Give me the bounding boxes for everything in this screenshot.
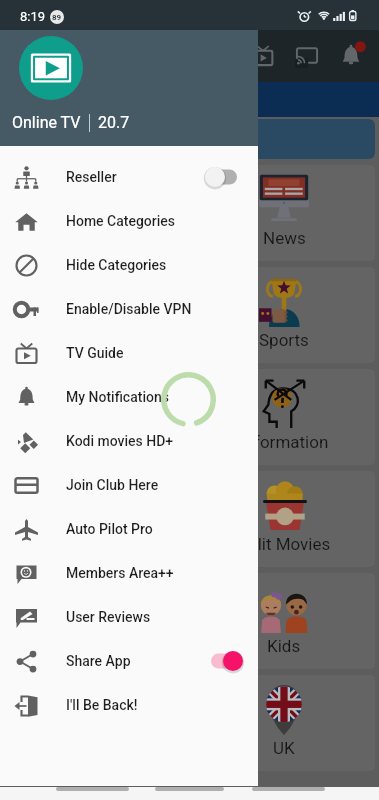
button[interactable]: Information	[4, 369, 186, 465]
button[interactable]: User Reviews	[0, 595, 258, 639]
button[interactable]: Kodi movies HD+	[0, 419, 258, 463]
button[interactable]: UK	[193, 675, 375, 771]
staticText: 20.7	[98, 113, 130, 132]
button[interactable]: TV	[241, 34, 285, 78]
staticText: TV Guide	[66, 345, 124, 361]
button[interactable]: Toggle	[204, 649, 244, 673]
button[interactable]: Kids	[4, 573, 186, 669]
staticText: 89	[52, 13, 62, 22]
staticText: Members Area++	[66, 565, 174, 581]
button[interactable]: Members Area++	[0, 551, 258, 595]
staticText: Hide Categories	[66, 257, 167, 273]
button[interactable]: Information	[193, 369, 375, 465]
staticText: Information	[240, 432, 329, 452]
button[interactable]: Toggle	[204, 165, 244, 189]
button[interactable]: Share App	[0, 639, 258, 683]
button[interactable]: Join Club Here	[0, 463, 258, 507]
button[interactable]: Kids	[193, 573, 375, 669]
button[interactable]: Hide Categories	[0, 243, 258, 287]
staticText: UK	[273, 738, 295, 758]
staticText: 8:19	[20, 9, 46, 24]
button[interactable]: I'll Be Back!	[0, 683, 258, 727]
button[interactable]: News	[4, 165, 186, 261]
staticText: Join Club Here	[66, 477, 159, 493]
staticText: Kodi movies HD+	[66, 433, 174, 449]
staticText: I'll Be Back!	[66, 697, 138, 713]
staticText: My Notifications	[66, 389, 169, 405]
button[interactable]: Sports	[193, 267, 375, 363]
button[interactable]: Reseller	[0, 155, 258, 199]
staticText: Enable/Disable VPN	[66, 301, 192, 317]
button[interactable]: My Notifications	[0, 375, 258, 419]
staticText: Split Movies	[238, 534, 331, 554]
staticText: Kids	[78, 636, 112, 656]
button[interactable]: TV Guide	[0, 331, 258, 375]
staticText: User Reviews	[66, 609, 151, 625]
staticText: Sports	[259, 330, 309, 350]
staticText: Reseller	[66, 169, 117, 185]
staticText: Share App	[66, 653, 131, 669]
staticText: Sports	[70, 330, 120, 350]
staticText: Information	[51, 432, 140, 452]
button[interactable]: Enable/Disable VPN	[0, 287, 258, 331]
button[interactable]: Cast	[285, 34, 329, 78]
button[interactable]: Split Movies	[193, 471, 375, 567]
staticText: News	[263, 228, 306, 248]
button[interactable]: Auto Pilot Pro	[0, 507, 258, 551]
staticText: Home Categories	[66, 213, 175, 229]
staticText: Online TV	[12, 113, 81, 132]
button[interactable]: Home Categories	[0, 199, 258, 243]
button[interactable]: Split Movies	[4, 471, 186, 567]
staticText: Auto Pilot Pro	[66, 521, 153, 537]
staticText: Kids	[267, 636, 301, 656]
button[interactable]: Sports	[4, 267, 186, 363]
button[interactable]: Notifications	[329, 34, 373, 78]
button[interactable]: News	[193, 165, 375, 261]
button[interactable]: UK	[4, 675, 186, 771]
